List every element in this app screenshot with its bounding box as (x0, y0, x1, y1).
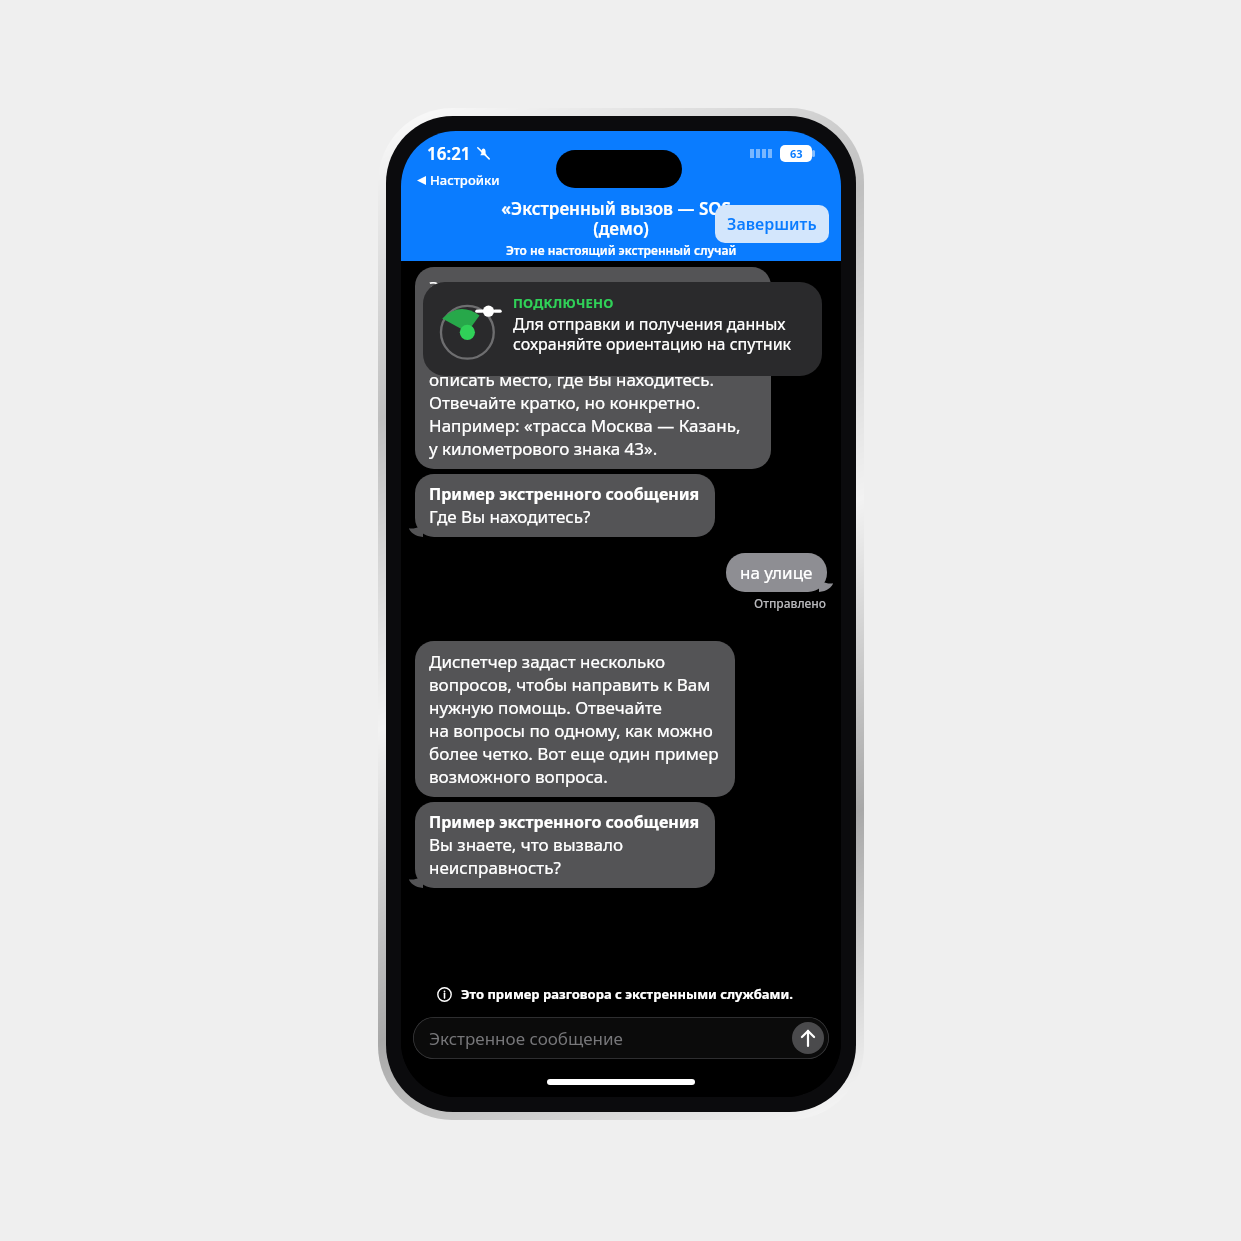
button[interactable]: на улице (726, 553, 827, 592)
button[interactable]: Пример экстренного сообщения (415, 474, 715, 537)
staticText: 16:21 (427, 142, 471, 165)
staticText: Настройки (430, 171, 500, 189)
button[interactable]: Send (792, 1022, 824, 1054)
button[interactable]: Пример экстренного сообщения (415, 802, 715, 888)
staticText: Для отправки и получения данных сохраняй… (513, 313, 808, 354)
button[interactable]: Это пример разговора с экстренными служб… (415, 267, 771, 469)
staticText: Пример экстренного сообщения (429, 483, 700, 505)
staticText: «Экстренный вызов — SOS» (демо) (501, 197, 741, 240)
staticText: 63 (790, 146, 803, 161)
staticText: Это пример разговора с экстренными служб… (429, 276, 750, 460)
staticText: ПОДКЛЮЧЕНО (513, 294, 614, 312)
button[interactable]: Экстренное сообщение (413, 1017, 829, 1059)
staticText: Диспетчер задаст несколько вопросов, что… (429, 650, 719, 788)
staticText: Где Вы находитесь? (429, 505, 591, 528)
staticText: на улице (740, 561, 813, 584)
staticText: Завершить (727, 213, 817, 235)
button[interactable]: Настройки (413, 169, 504, 191)
other: Satellite connected (437, 296, 503, 362)
staticText: Экстренное сообщение (429, 1027, 623, 1050)
button[interactable]: Диспетчер задаст несколько вопросов, что… (415, 641, 735, 797)
staticText: Вы знаете, что вызвало неисправность? (429, 833, 624, 879)
button[interactable]: Завершить (715, 205, 829, 243)
staticText: Это пример разговора с экстренными служб… (461, 985, 793, 1003)
staticText: Это не настоящий экстренный случай (506, 242, 737, 258)
staticText: Отправлено (754, 595, 827, 611)
staticText: Пример экстренного сообщения (429, 811, 700, 833)
button[interactable]: Satellite connected (423, 282, 822, 376)
